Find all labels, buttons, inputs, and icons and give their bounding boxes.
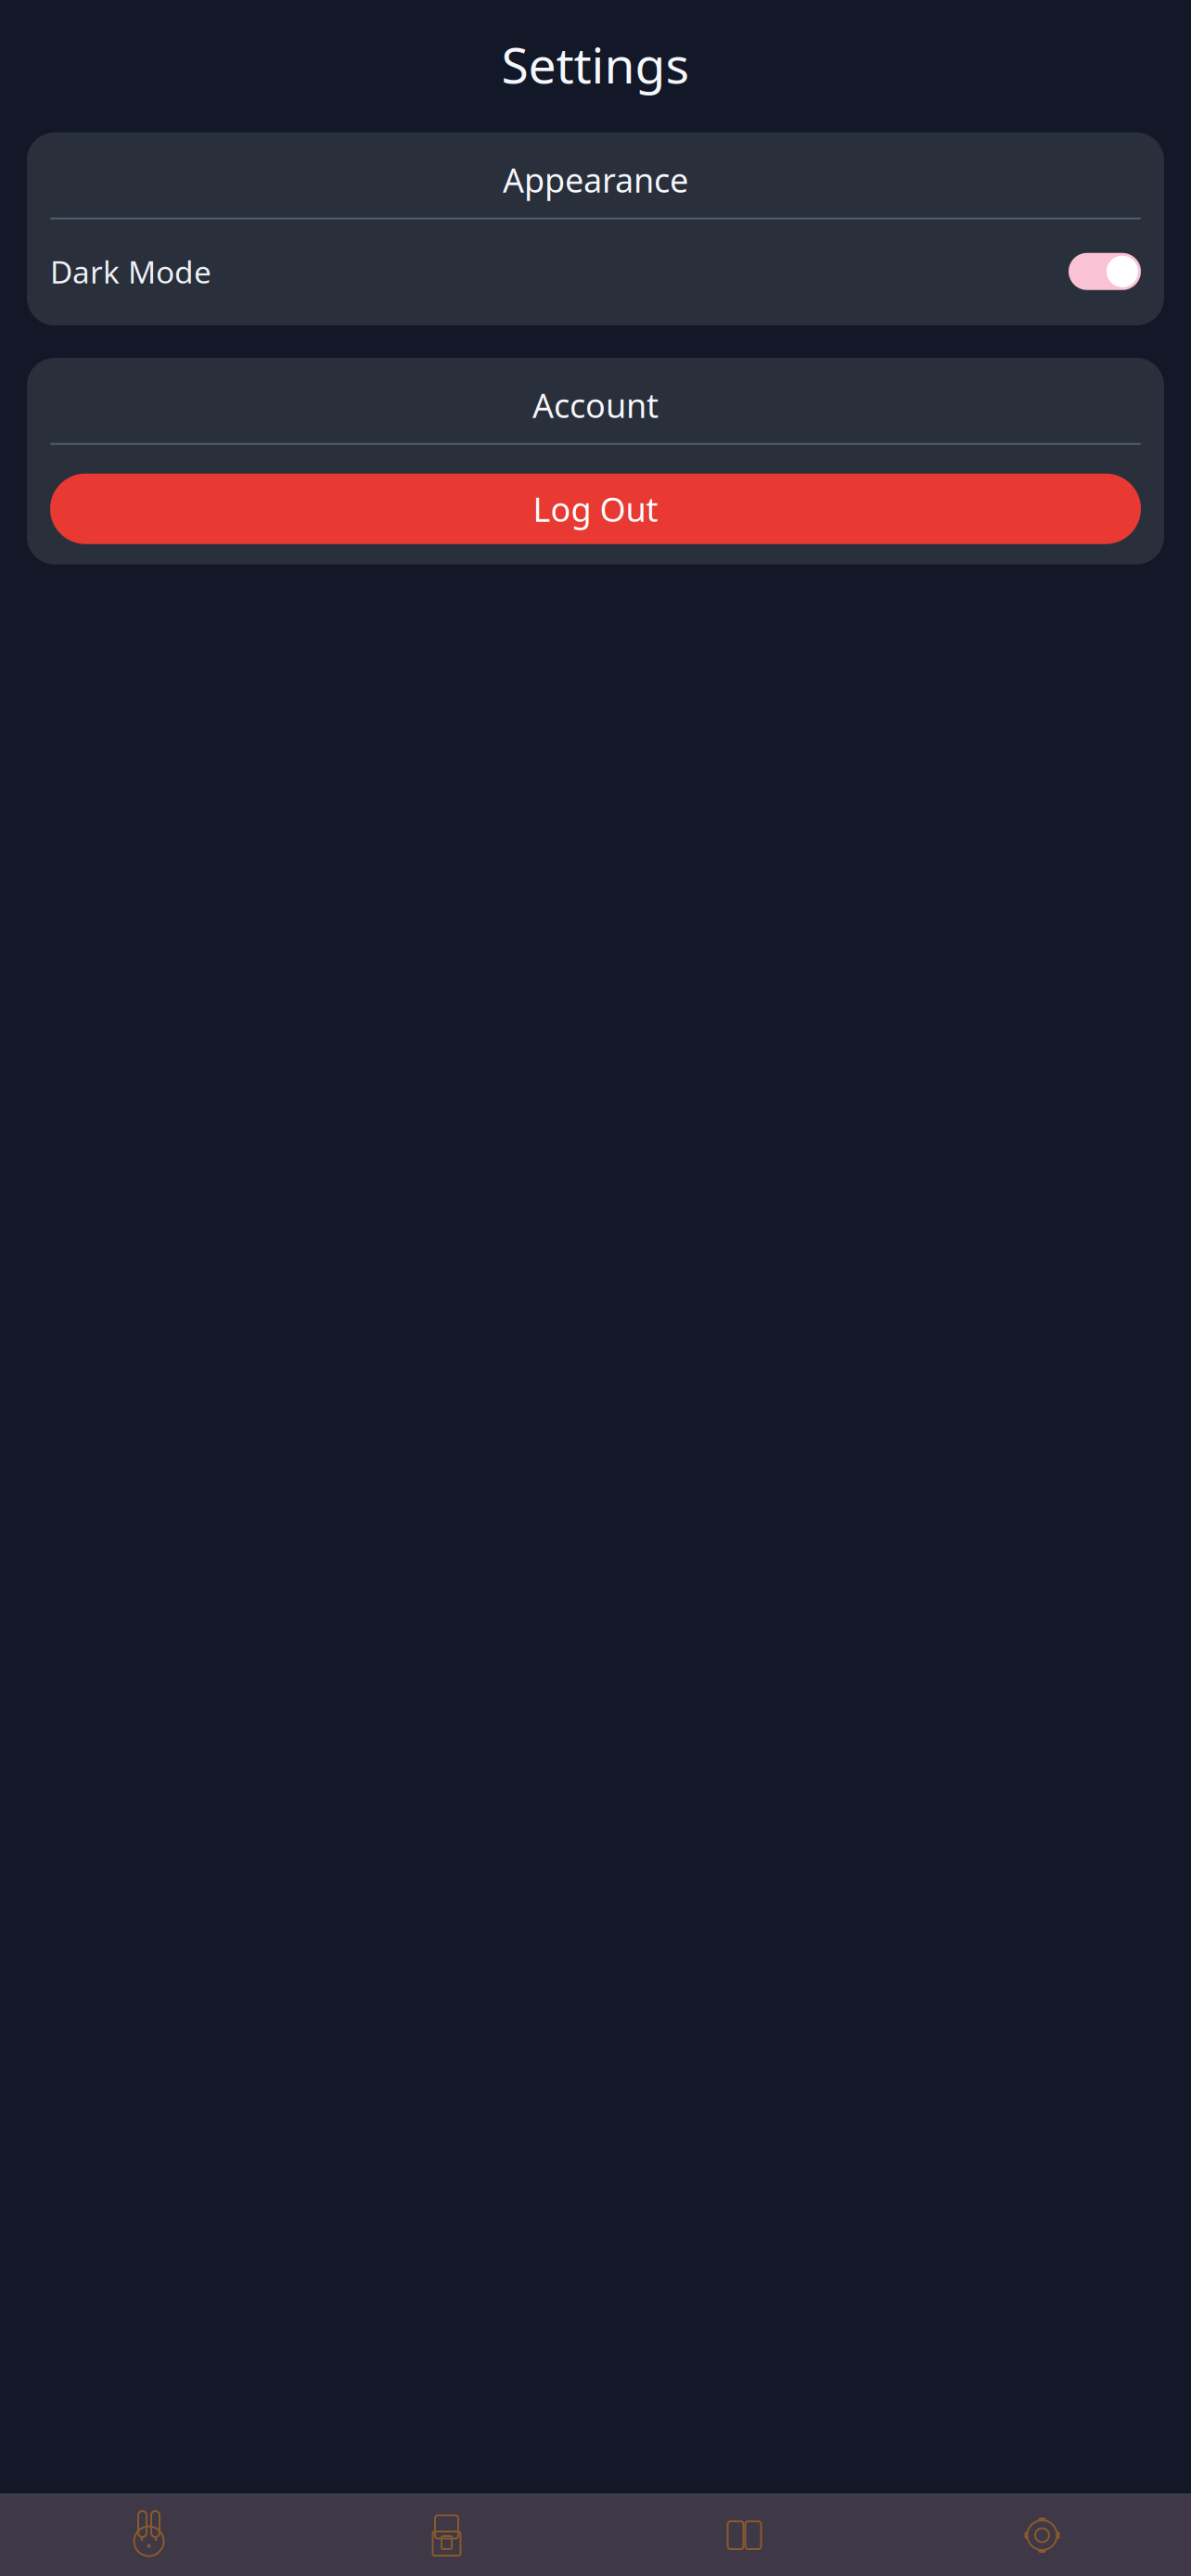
staticText: Log Out	[533, 487, 658, 531]
staticText: Appearance	[503, 157, 688, 202]
staticText: Account	[532, 383, 659, 427]
button[interactable]: Home	[298, 2514, 595, 2557]
staticText: Settings	[501, 32, 690, 97]
button[interactable]: Settings	[893, 2514, 1191, 2557]
button[interactable]: Dark Mode, on	[1069, 253, 1141, 290]
button[interactable]: Pet	[0, 2514, 298, 2557]
button[interactable]: Log Out	[50, 474, 1141, 544]
staticText: Dark Mode	[50, 251, 211, 292]
button[interactable]: Library	[595, 2514, 893, 2557]
